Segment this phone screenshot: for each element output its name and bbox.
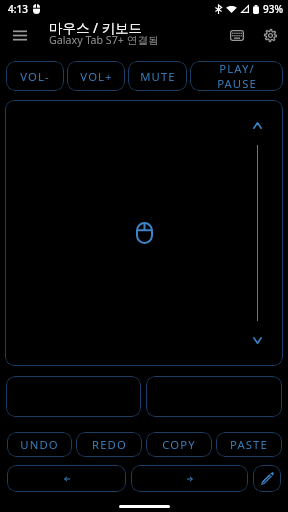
staticText: 4:13 — [8, 2, 28, 16]
staticText: Galaxy Tab S7+ 연결됨 — [49, 33, 159, 48]
button[interactable]: PASTE — [216, 432, 282, 457]
staticText: VOL- — [20, 69, 50, 84]
staticText: COPY — [162, 437, 196, 452]
staticText: VOL+ — [80, 69, 113, 84]
button[interactable]: Keyboard — [221, 19, 253, 51]
button[interactable]: Touchpad — [5, 100, 283, 366]
staticText: MUTE — [140, 69, 176, 84]
staticText: REDO — [92, 437, 127, 452]
button[interactable]: Forward — [131, 465, 248, 492]
button[interactable]: Back — [7, 465, 126, 492]
staticText: 93% — [263, 2, 283, 16]
button[interactable]: VOL- — [6, 61, 64, 91]
button[interactable]: Menu — [3, 19, 36, 52]
button[interactable]: REDO — [76, 432, 142, 457]
staticText: PASTE — [230, 437, 268, 452]
button[interactable]: COPY — [146, 432, 212, 457]
button[interactable]: Left click — [6, 376, 141, 417]
button[interactable]: UNDO — [7, 432, 72, 457]
button[interactable]: PLAY/ — [190, 61, 283, 91]
staticText: PLAY/ — [219, 61, 255, 76]
staticText: PAUSE — [217, 76, 257, 91]
staticText: 마우스 / 키보드 — [49, 19, 143, 37]
button[interactable]: Settings — [254, 19, 286, 51]
staticText: UNDO — [20, 437, 59, 452]
button[interactable]: MUTE — [128, 61, 187, 91]
button[interactable]: Right click — [146, 376, 282, 417]
button[interactable]: Edit text — [253, 465, 281, 492]
button[interactable]: VOL+ — [67, 61, 125, 91]
